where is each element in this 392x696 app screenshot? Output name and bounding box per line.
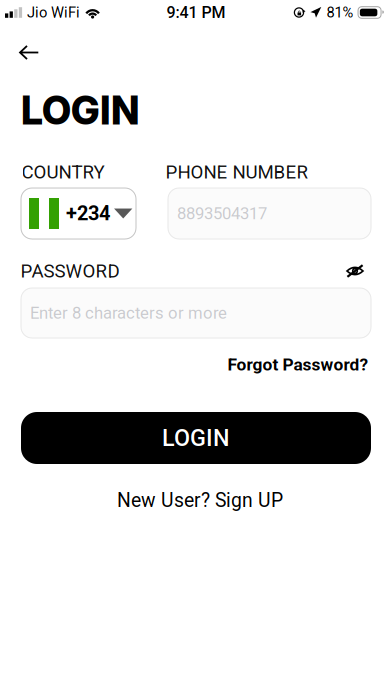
button[interactable]: New User? Sign UP	[117, 485, 283, 516]
button[interactable]: +234	[21, 188, 136, 239]
staticText: 9:41 PM	[166, 3, 225, 22]
staticText: 8893504317	[177, 204, 267, 223]
staticText: Jio WiFi	[27, 4, 80, 21]
staticText: LOGIN	[21, 87, 140, 134]
staticText: 81%	[326, 4, 353, 21]
staticText: New User? Sign UP	[117, 489, 283, 512]
staticText: PHONE NUMBER	[165, 161, 308, 183]
staticText: Forgot Password?	[227, 354, 368, 375]
staticText: Enter 8 characters or more	[30, 303, 227, 323]
staticText: +234	[66, 202, 110, 225]
staticText: COUNTRY	[21, 161, 104, 183]
staticText: LOGIN	[162, 424, 230, 452]
button[interactable]: Back	[9, 33, 49, 72]
button[interactable]: Show password	[337, 255, 373, 287]
button[interactable]: Forgot Password?	[227, 350, 368, 379]
staticText: PASSWORD	[20, 260, 119, 282]
button[interactable]: LOGIN	[21, 412, 371, 464]
